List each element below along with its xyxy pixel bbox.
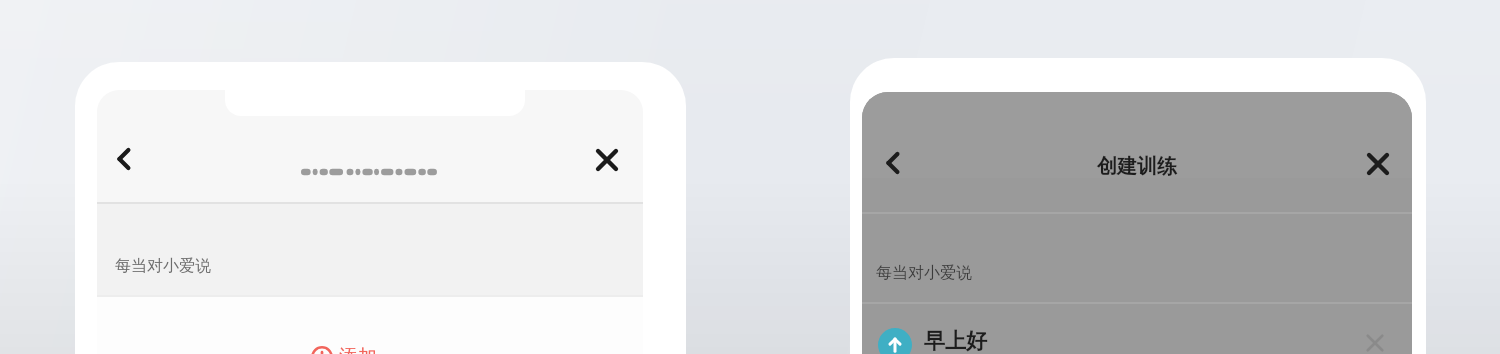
button[interactable]: 每当对小爱说 [97, 204, 643, 296]
staticText: 创建训练 [862, 154, 1412, 184]
staticText: 每当对小爱说 [876, 263, 972, 283]
button[interactable]: Back [880, 148, 910, 178]
button[interactable]: 每当对小爱说 [862, 214, 1412, 303]
button[interactable]: Close [591, 144, 623, 176]
button[interactable]: Back [111, 144, 141, 174]
button[interactable]: Close [1362, 148, 1394, 180]
button[interactable]: 添加 [311, 345, 349, 354]
button[interactable]: 早上好 [862, 304, 1412, 354]
staticText: 早上好 [924, 328, 987, 354]
staticText: 每当对小爱说 [115, 256, 211, 276]
staticText: 添加 [339, 345, 377, 354]
button[interactable]: Remove [1362, 330, 1388, 354]
